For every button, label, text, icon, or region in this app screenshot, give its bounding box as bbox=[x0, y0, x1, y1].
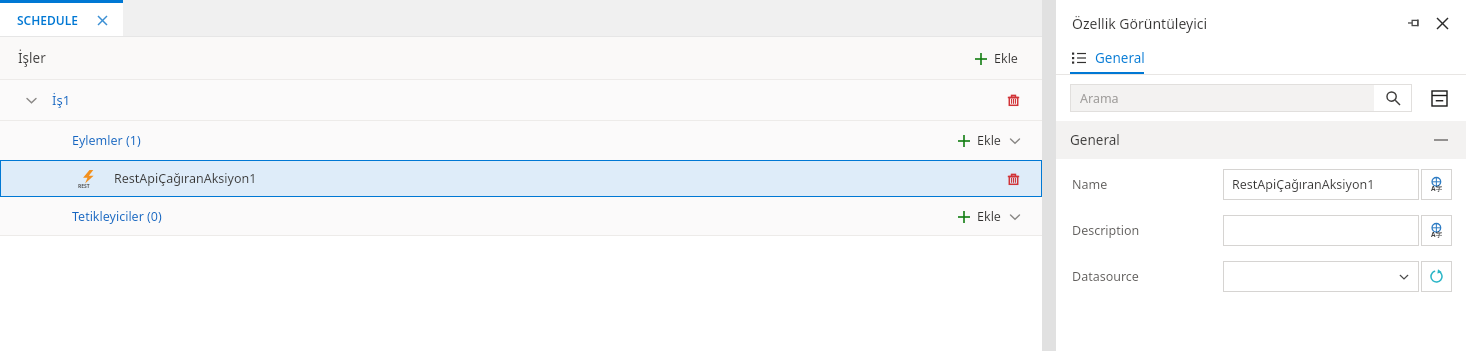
staticText: Ekle bbox=[977, 208, 1001, 225]
staticText: General bbox=[1070, 131, 1120, 149]
button[interactable]: RestApiÇağıranAksiyon1 bbox=[1223, 169, 1419, 200]
staticText: Arama bbox=[1080, 90, 1119, 107]
button[interactable]: General bbox=[1056, 121, 1466, 159]
staticText: SCHEDULE bbox=[17, 12, 79, 28]
staticText: Eylemler (1) bbox=[72, 132, 141, 149]
staticText: İş1 bbox=[52, 91, 71, 109]
button[interactable]: SCHEDULE bbox=[0, 0, 123, 37]
staticText: Ekle bbox=[977, 132, 1001, 149]
staticText: Özellik Görüntüleyici bbox=[1072, 14, 1208, 33]
button[interactable]: Eylemler (1) bbox=[0, 121, 1042, 160]
staticText: İşler bbox=[18, 49, 46, 67]
button[interactable]: Daralt bbox=[22, 91, 40, 109]
staticText: RestApiÇağıranAksiyon1 bbox=[114, 170, 257, 187]
staticText: Description bbox=[1072, 222, 1140, 239]
button[interactable]: Çeviri bbox=[1421, 169, 1452, 200]
staticText: Datasource bbox=[1072, 268, 1139, 285]
button[interactable] bbox=[1223, 261, 1419, 292]
button[interactable]: Ekle bbox=[969, 47, 1022, 70]
button[interactable]: Sil bbox=[1000, 166, 1026, 192]
staticText: General bbox=[1095, 49, 1145, 67]
button[interactable]: General bbox=[1072, 42, 1145, 74]
button[interactable] bbox=[1223, 215, 1419, 246]
staticText: Ekle bbox=[994, 50, 1018, 67]
button[interactable]: Ekle bbox=[952, 205, 1026, 228]
button[interactable]: Kapat bbox=[1430, 11, 1454, 35]
button[interactable]: Ekle bbox=[952, 129, 1026, 152]
button[interactable]: Arama bbox=[1070, 84, 1412, 112]
button[interactable]: Çeviri bbox=[1421, 215, 1452, 246]
button[interactable]: Grupla bbox=[1426, 85, 1452, 111]
staticText: Name bbox=[1072, 176, 1108, 193]
staticText: REST bbox=[78, 183, 90, 190]
staticText: RestApiÇağıranAksiyon1 bbox=[1232, 176, 1375, 193]
staticText: A字 bbox=[1431, 184, 1442, 193]
button[interactable]: Daralt bbox=[0, 80, 1042, 120]
staticText: Tetikleyiciler (0) bbox=[72, 208, 162, 225]
button[interactable]: Yenile bbox=[1421, 261, 1452, 292]
button[interactable]: Kapat bbox=[93, 11, 111, 29]
button[interactable]: Tetikleyiciler (0) bbox=[0, 197, 1042, 235]
button[interactable]: Sabitle bbox=[1402, 11, 1426, 35]
button[interactable]: RestApiÇağıranAksiyon1 bbox=[0, 160, 1042, 197]
staticText: A字 bbox=[1431, 230, 1442, 239]
button[interactable]: Sil bbox=[1000, 87, 1026, 113]
